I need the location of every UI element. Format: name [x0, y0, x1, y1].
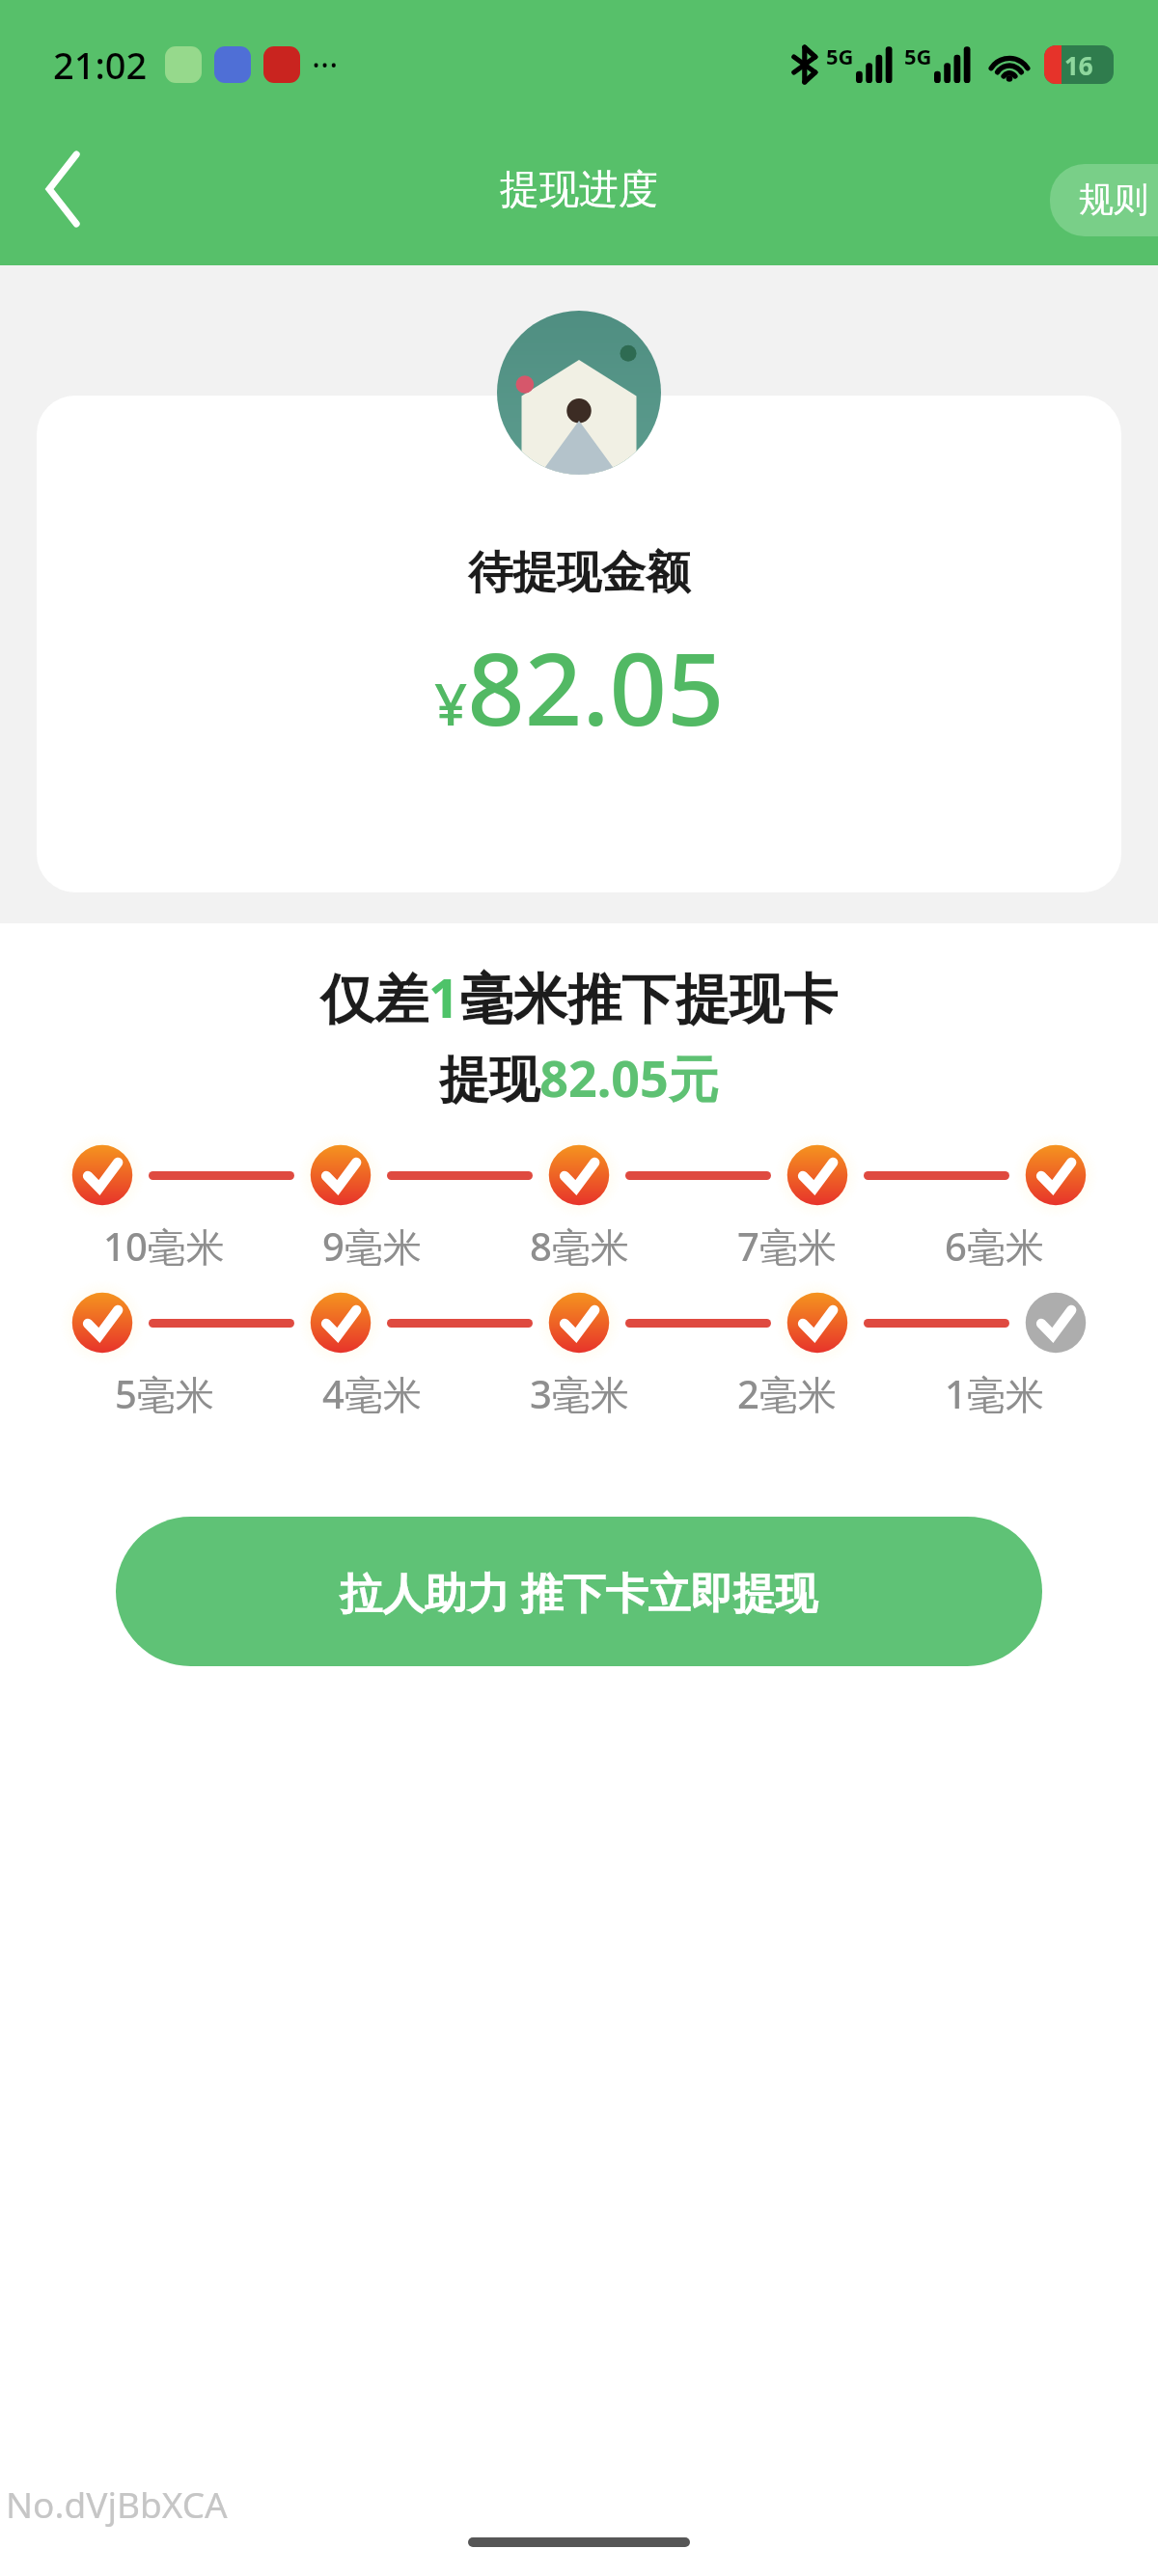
staticText: 16 [1064, 48, 1093, 82]
staticText: 21:02 [53, 40, 148, 90]
staticText: No.dVjBbXCA [6, 2480, 228, 2528]
staticText: 待提现金额 [468, 545, 690, 601]
staticText: 2毫米 [737, 1367, 837, 1420]
staticText: 5G [826, 41, 854, 70]
button[interactable]: 规则 [1050, 164, 1158, 236]
staticText: 6毫米 [945, 1219, 1044, 1273]
staticText: 9毫米 [322, 1219, 422, 1273]
staticText: 拉人助力 推下卡立即提现 [340, 1563, 818, 1621]
staticText: 7毫米 [737, 1219, 837, 1273]
staticText: 5毫米 [115, 1367, 214, 1420]
staticText: 4毫米 [322, 1367, 422, 1420]
staticText: 提现进度 [500, 165, 658, 215]
staticText: ¥82.05 [434, 618, 725, 755]
staticText: 10毫米 [103, 1219, 225, 1273]
staticText: 1毫米 [945, 1367, 1044, 1420]
staticText: 3毫米 [530, 1367, 629, 1420]
staticText: ··· [312, 42, 339, 87]
staticText: 规则 [1079, 178, 1148, 221]
staticText: 仅差1毫米推下提现卡 [0, 960, 1158, 1033]
staticText: 8毫米 [530, 1219, 629, 1273]
button[interactable]: Back [17, 143, 110, 235]
button[interactable]: 拉人助力 推下卡立即提现 [116, 1517, 1042, 1666]
staticText: 5G [904, 41, 932, 70]
staticText: 提现82.05元 [0, 1043, 1158, 1111]
